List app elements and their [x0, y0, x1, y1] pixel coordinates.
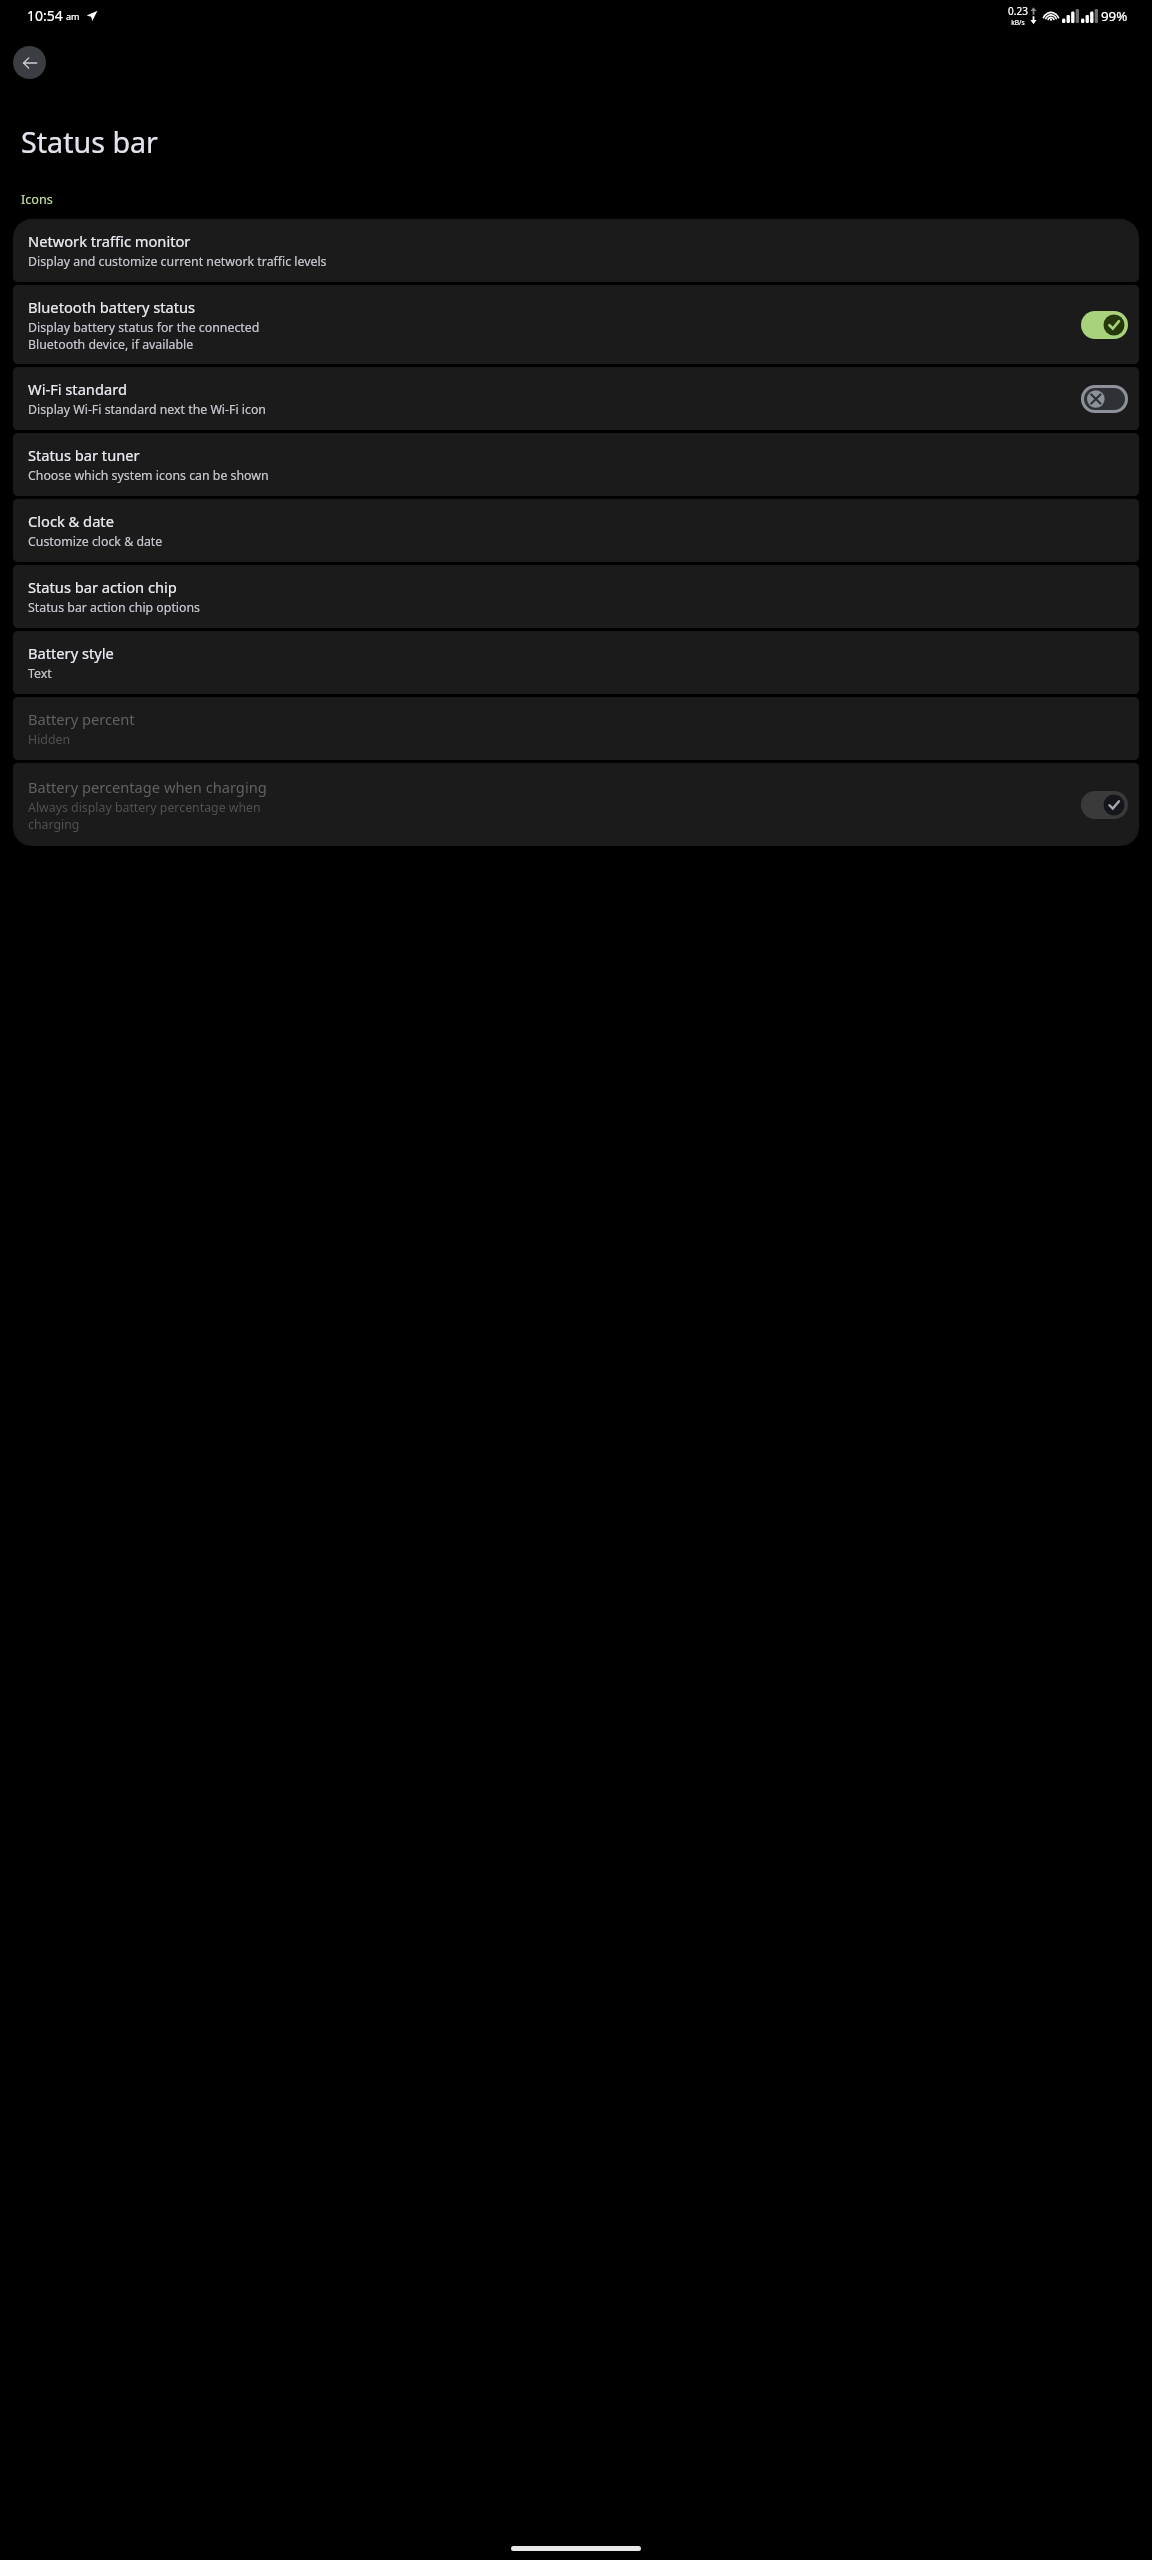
button[interactable]: Network traffic monitor	[13, 219, 1139, 282]
button[interactable]: Status bar tuner	[13, 433, 1139, 496]
staticText: Status bar action chip	[28, 577, 177, 597]
button[interactable]: Battery style	[13, 631, 1139, 694]
button[interactable]: Wi-Fi standard	[13, 367, 1139, 430]
staticText: Text	[28, 665, 52, 682]
staticText: 0.23	[1008, 4, 1028, 18]
button[interactable]: Bluetooth battery status	[13, 285, 1139, 364]
staticText: Battery percent	[28, 709, 135, 729]
staticText: Display and customize current network tr…	[28, 253, 327, 270]
staticText: Display Wi-Fi standard next the Wi-Fi ic…	[28, 401, 266, 418]
button[interactable]: Status bar action chip	[13, 565, 1139, 628]
staticText: Battery style	[28, 643, 114, 663]
staticText: Bluetooth battery status	[28, 297, 196, 317]
staticText: Network traffic monitor	[28, 231, 191, 251]
staticText: Status bar action chip options	[28, 599, 201, 616]
button[interactable]: Battery percent	[13, 697, 1139, 760]
staticText: Battery percentage when charging	[28, 777, 267, 797]
staticText: Icons	[21, 190, 53, 207]
staticText: Display battery status for the connected…	[28, 319, 260, 352]
button[interactable]: Toggle Bluetooth battery status	[1081, 311, 1128, 339]
staticText: 99%	[1101, 7, 1128, 25]
staticText: Status bar tuner	[28, 445, 140, 465]
staticText: 10:54	[27, 6, 63, 25]
button[interactable]: Toggle Battery percentage when charging	[1081, 791, 1128, 819]
staticText: Always display battery percentage when c…	[28, 799, 261, 832]
staticText: Wi-Fi standard	[28, 379, 127, 399]
button[interactable]: Battery percentage when charging	[13, 763, 1139, 846]
staticText: Clock & date	[28, 511, 114, 531]
staticText: Customize clock & date	[28, 533, 163, 550]
staticText: Status bar	[21, 122, 158, 161]
staticText: am	[66, 10, 80, 22]
button[interactable]: Clock & date	[13, 499, 1139, 562]
button[interactable]: Back	[13, 46, 46, 79]
staticText: Choose which system icons can be shown	[28, 467, 269, 484]
staticText: kB/s	[1011, 18, 1025, 27]
staticText: Hidden	[28, 731, 71, 748]
button[interactable]: Toggle Wi-Fi standard	[1081, 385, 1128, 413]
